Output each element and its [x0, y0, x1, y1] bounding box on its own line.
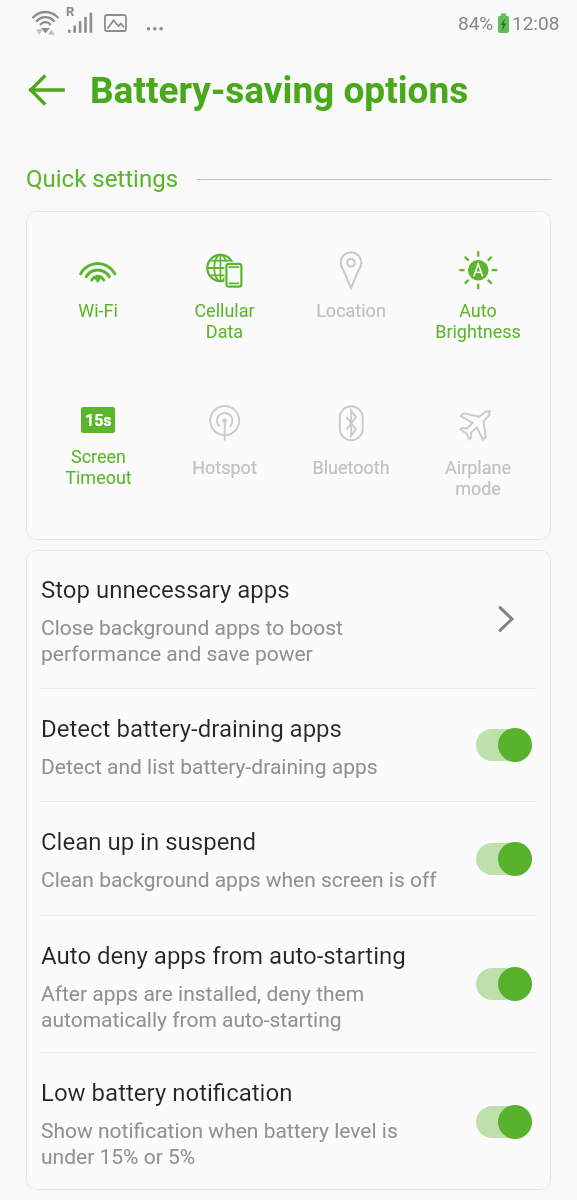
- button[interactable]: Auto Brightness: [414, 246, 541, 342]
- staticText: Screen Timeout: [65, 446, 132, 488]
- button[interactable]: Location: [287, 246, 414, 321]
- staticText: 12:08: [512, 12, 560, 34]
- button[interactable]: Toggle: [476, 842, 532, 876]
- button[interactable]: Open: [486, 599, 526, 639]
- staticText: Detect and list battery-draining apps: [41, 755, 378, 780]
- staticText: 84%: [458, 12, 494, 34]
- staticText: Close background apps to boost performan…: [41, 616, 343, 666]
- button[interactable]: Cellular Data: [161, 246, 287, 342]
- staticText: Stop unnecessary apps: [41, 576, 290, 604]
- button[interactable]: Low battery notification: [26, 1053, 551, 1190]
- button[interactable]: Wi-Fi: [35, 246, 161, 321]
- button[interactable]: Airplane mode: [414, 403, 541, 499]
- staticText: Cellular Data: [194, 300, 255, 342]
- button[interactable]: Toggle: [476, 967, 532, 1001]
- staticText: Show notification when battery level is …: [41, 1119, 398, 1169]
- staticText: Wi-Fi: [78, 300, 118, 321]
- staticText: After apps are installed, deny them auto…: [41, 982, 365, 1032]
- staticText: Clean up in suspend: [41, 828, 257, 856]
- button[interactable]: Hotspot: [161, 403, 287, 478]
- staticText: Bluetooth: [312, 457, 390, 478]
- button[interactable]: Toggle: [476, 1105, 532, 1139]
- staticText: 15s: [85, 411, 112, 430]
- button[interactable]: Bluetooth: [287, 403, 414, 478]
- button[interactable]: Back: [20, 63, 74, 117]
- button[interactable]: 15s: [35, 403, 161, 488]
- staticText: Battery-saving options: [90, 69, 469, 112]
- button[interactable]: Toggle: [476, 728, 532, 762]
- button[interactable]: Detect battery-draining apps: [26, 689, 551, 801]
- staticText: Airplane mode: [445, 457, 511, 499]
- button[interactable]: Stop unnecessary apps: [26, 550, 551, 688]
- staticText: Low battery notification: [41, 1079, 293, 1107]
- staticText: Auto deny apps from auto-starting: [41, 942, 406, 970]
- button[interactable]: Clean up in suspend: [26, 802, 551, 915]
- staticText: R: [66, 4, 75, 19]
- staticText: Detect battery-draining apps: [41, 715, 342, 743]
- staticText: Location: [316, 300, 386, 321]
- staticText: Hotspot: [192, 457, 257, 478]
- button[interactable]: Auto deny apps from auto-starting: [26, 916, 551, 1052]
- staticText: Clean background apps when screen is off: [41, 868, 437, 893]
- staticText: Quick settings: [26, 165, 179, 193]
- staticText: Auto Brightness: [435, 300, 521, 342]
